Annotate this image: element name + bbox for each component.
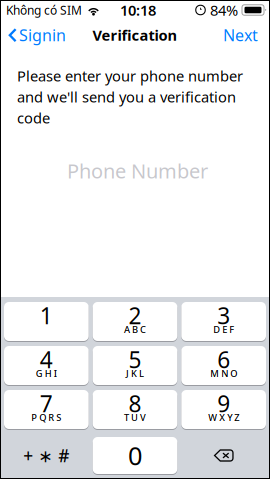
button[interactable]: Next xyxy=(217,19,264,51)
staticText: G H I xyxy=(36,367,57,380)
staticText: Next xyxy=(223,24,258,46)
staticText: Không có SIM xyxy=(6,2,82,18)
staticText: 4 xyxy=(40,344,53,374)
button[interactable]: 9 xyxy=(181,390,266,429)
button[interactable]: 5 xyxy=(93,346,177,385)
staticText: 5 xyxy=(128,344,141,374)
button[interactable]: + ∗ # xyxy=(4,437,89,474)
button[interactable]: 8 xyxy=(93,390,177,429)
staticText: 1 xyxy=(40,300,53,330)
staticText: 0 xyxy=(128,439,142,472)
staticText: W X Y Z xyxy=(208,411,239,424)
staticText: + ∗ # xyxy=(23,444,69,467)
staticText: 84% xyxy=(210,0,238,20)
button[interactable]: Signin xyxy=(3,19,71,51)
staticText: Verification xyxy=(92,25,177,45)
button[interactable]: 7 xyxy=(4,390,89,429)
staticText: A B C xyxy=(124,323,146,336)
staticText: 9 xyxy=(217,388,230,418)
staticText: 10:18 xyxy=(120,0,156,20)
staticText: 6 xyxy=(217,344,230,374)
button[interactable]: Delete xyxy=(181,437,266,474)
staticText: 2 xyxy=(128,300,141,330)
staticText: Phone Number xyxy=(67,157,208,184)
staticText: M N O xyxy=(210,367,237,380)
staticText: 7 xyxy=(40,388,53,418)
button[interactable]: 2 xyxy=(93,302,177,341)
button[interactable]: 1 xyxy=(4,302,89,341)
button[interactable]: 6 xyxy=(181,346,266,385)
button[interactable]: 3 xyxy=(181,302,266,341)
staticText: Please enter your phone number and we'll… xyxy=(17,66,243,127)
staticText: Signin xyxy=(19,24,66,46)
staticText: J K L xyxy=(126,367,144,380)
button[interactable]: 4 xyxy=(4,346,89,385)
staticText: 3 xyxy=(217,300,230,330)
staticText: T U V xyxy=(124,411,146,424)
staticText: D E F xyxy=(213,323,234,336)
staticText: 8 xyxy=(128,388,141,418)
button[interactable]: 0 xyxy=(93,437,177,474)
staticText: P Q R S xyxy=(31,411,61,424)
